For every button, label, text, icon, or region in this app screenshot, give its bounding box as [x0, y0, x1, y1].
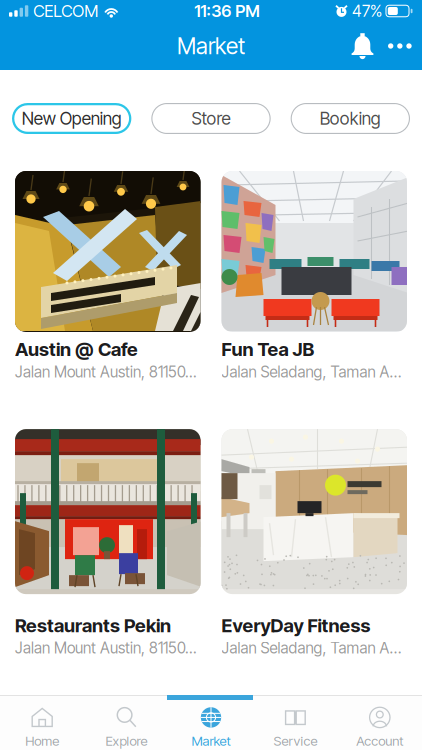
staticText: Austin @ Cafe — [15, 338, 138, 361]
staticText: Market — [191, 733, 230, 749]
button[interactable]: New Opening — [12, 103, 131, 134]
staticText: New Opening — [22, 108, 122, 129]
staticText: Market — [177, 32, 245, 60]
staticText: Service — [273, 733, 317, 749]
button[interactable]: Fun Tea JB — [221, 171, 407, 381]
button[interactable]: Notifications — [342, 22, 383, 70]
staticText: 47% — [352, 1, 382, 21]
staticText: EveryDay Fitness — [221, 614, 370, 637]
staticText: Jalan Seladang, Taman Aba... — [221, 363, 407, 381]
staticText: Jalan Mount Austin, 81150... — [15, 363, 197, 381]
staticText: Home — [25, 733, 59, 749]
staticText: Account — [356, 733, 403, 749]
staticText: CELCOM — [33, 1, 98, 21]
button[interactable]: Home — [0, 695, 84, 750]
staticText: Fun Tea JB — [221, 338, 314, 361]
button[interactable]: Account — [338, 695, 422, 750]
button[interactable]: EveryDay Fitness — [221, 429, 407, 657]
staticText: Restaurants Pekin — [15, 614, 171, 637]
staticText: Explore — [106, 733, 148, 749]
button[interactable]: More options — [383, 32, 417, 60]
staticText: Booking — [320, 108, 381, 129]
button[interactable]: Austin @ Cafe — [15, 171, 200, 381]
staticText: Jalan Seladang, Taman Aba... — [221, 639, 407, 657]
button[interactable]: Market — [169, 695, 253, 750]
button[interactable]: Service — [253, 695, 338, 750]
staticText: 11:36 PM — [194, 1, 260, 21]
staticText: Jalan Mount Austin, 81150... — [15, 639, 197, 657]
button[interactable]: Explore — [84, 695, 169, 750]
button[interactable]: Store — [151, 103, 271, 134]
button[interactable]: Booking — [291, 103, 410, 134]
button[interactable]: Restaurants Pekin — [15, 429, 200, 657]
staticText: Store — [191, 108, 230, 129]
